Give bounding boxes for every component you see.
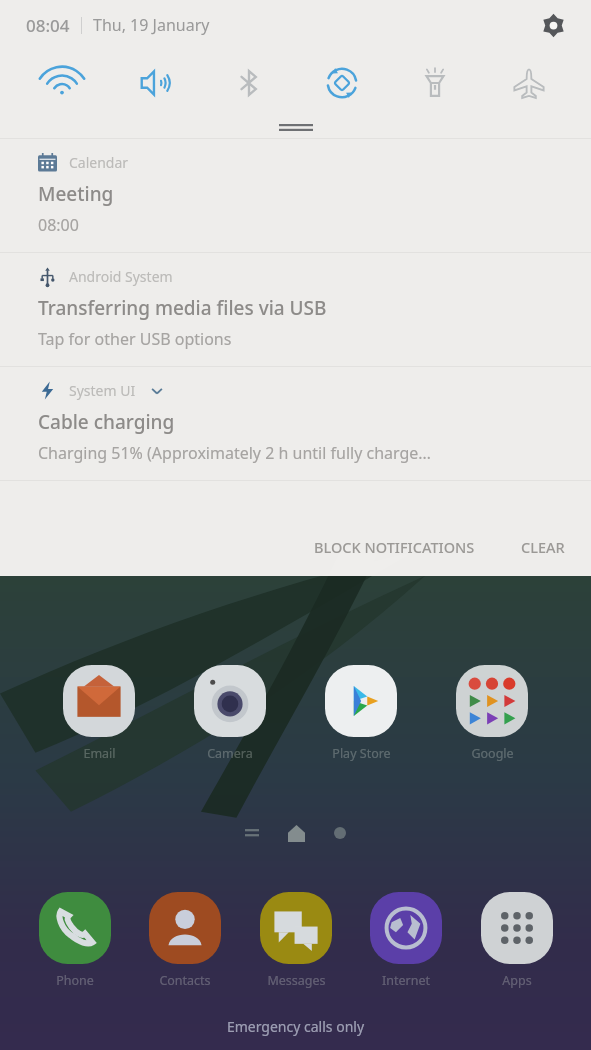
staticText: Tap for other USB options — [38, 328, 232, 350]
button[interactable]: Home page — [283, 820, 309, 846]
staticText: Cable charging — [38, 409, 175, 435]
button[interactable]: Messages — [248, 890, 344, 991]
button[interactable]: BLOCK NOTIFICATIONS — [304, 529, 485, 565]
staticText: Email — [83, 745, 116, 762]
staticText: Charging 51% (Approximately 2 h until fu… — [38, 442, 431, 464]
staticText: Android System — [69, 267, 173, 286]
button[interactable]: Wi-Fi — [31, 52, 93, 114]
button[interactable]: Contacts — [137, 890, 233, 991]
button[interactable]: Bluetooth — [218, 52, 280, 114]
button[interactable]: Camera — [182, 663, 278, 764]
staticText: Camera — [207, 745, 253, 762]
staticText: BLOCK NOTIFICATIONS — [314, 537, 475, 557]
button[interactable]: Android System — [0, 253, 591, 366]
staticText: CLEAR — [521, 537, 565, 557]
button[interactable]: Auto rotate — [311, 52, 373, 114]
staticText: Internet — [382, 972, 430, 989]
button[interactable]: Pages — [241, 822, 263, 844]
button[interactable]: Email — [51, 663, 147, 764]
button[interactable]: Airplane mode — [498, 52, 560, 114]
staticText: 08:04 — [26, 14, 70, 37]
button[interactable]: Play Store — [313, 663, 409, 764]
staticText: Thu, 19 January — [93, 14, 210, 36]
staticText: Google — [471, 745, 514, 762]
button[interactable]: CLEAR — [511, 529, 575, 565]
staticText: Contacts — [159, 972, 211, 989]
staticText: Emergency calls only — [0, 1017, 591, 1036]
button[interactable]: Phone — [27, 890, 123, 991]
staticText: Play Store — [332, 745, 391, 762]
staticText: Meeting — [38, 181, 114, 207]
button[interactable]: Expand quick settings — [0, 116, 591, 138]
staticText: System UI — [69, 381, 136, 400]
staticText: Apps — [502, 972, 532, 989]
staticText: Calendar — [69, 153, 129, 172]
staticText: Messages — [267, 972, 326, 989]
staticText: Transferring media files via USB — [38, 295, 327, 321]
staticText: 08:00 — [38, 214, 79, 236]
button[interactable]: Google — [444, 663, 540, 764]
button[interactable]: Settings — [533, 5, 573, 45]
button[interactable]: System UI — [0, 367, 591, 480]
button[interactable]: Flashlight — [404, 52, 466, 114]
staticText: Phone — [56, 972, 94, 989]
button[interactable]: Next page — [329, 822, 351, 844]
button[interactable]: Sound — [125, 52, 187, 114]
button[interactable]: Apps — [469, 890, 565, 991]
button[interactable]: Calendar — [0, 139, 591, 252]
button[interactable]: Internet — [358, 890, 454, 991]
